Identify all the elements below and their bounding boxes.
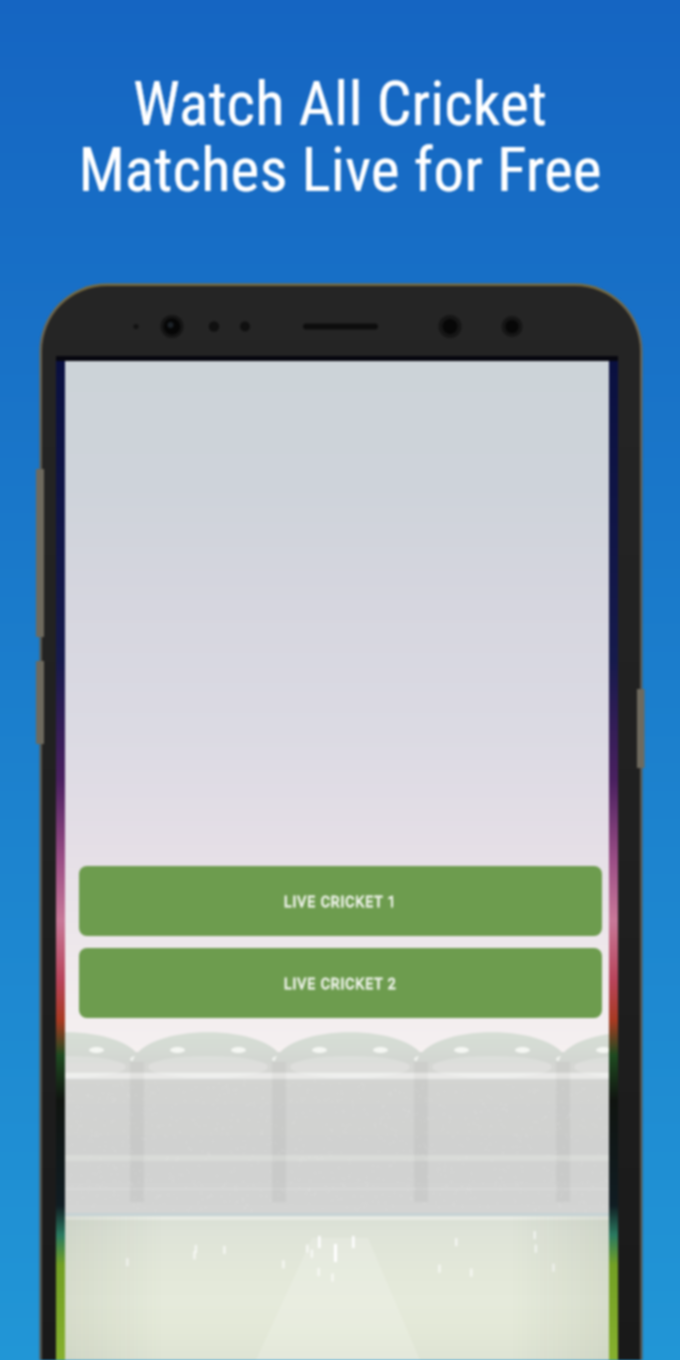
- staticText: Watch All Cricket Matches Live for Free: [0, 68, 680, 206]
- staticText: LIVE CRICKET 2: [284, 976, 397, 992]
- button[interactable]: LIVE CRICKET 2: [79, 948, 602, 1018]
- staticText: LIVE CRICKET 1: [284, 894, 397, 910]
- button[interactable]: LIVE CRICKET 1: [79, 866, 602, 936]
- other: Phone preview: [0, 0, 680, 1360]
